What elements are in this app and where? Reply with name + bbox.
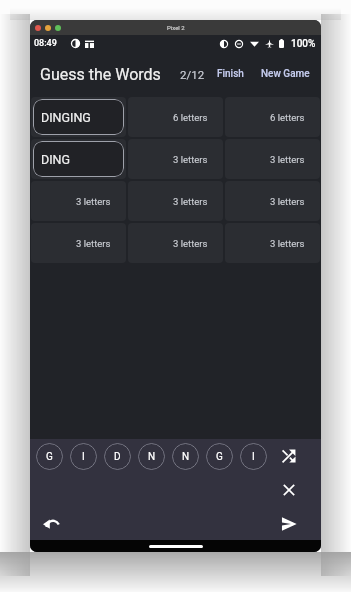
staticText: Guess the Words [40, 65, 161, 84]
staticText: 6 letters [270, 112, 305, 123]
staticText: 3 letters [76, 196, 111, 207]
button[interactable]: Submit word [277, 512, 301, 536]
staticText: Pixel 2 [167, 24, 185, 31]
button[interactable]: N [172, 443, 199, 470]
button[interactable]: Minimize window [45, 25, 51, 31]
button[interactable]: I [240, 443, 267, 470]
button[interactable]: Shuffle letters [277, 444, 301, 468]
staticText: 3 letters [173, 238, 208, 249]
button[interactable]: Close window [35, 25, 41, 31]
staticText: 3 letters [173, 154, 208, 165]
staticText: 6 letters [173, 112, 208, 123]
staticText: 3 letters [270, 238, 305, 249]
staticText: I [82, 451, 85, 463]
staticText: Finish [217, 68, 244, 80]
button[interactable]: Maximize window [55, 25, 61, 31]
staticText: I [252, 451, 255, 463]
button[interactable]: G [36, 443, 63, 470]
button[interactable]: 3 letters [128, 181, 223, 221]
staticText: N [182, 451, 190, 463]
staticText: 3 letters [76, 238, 111, 249]
button[interactable]: DING [31, 139, 126, 179]
staticText: 2/12 [180, 68, 205, 81]
button[interactable]: 3 letters [225, 223, 320, 263]
button[interactable]: New Game [257, 60, 314, 88]
button[interactable]: D [104, 443, 131, 470]
staticText: DING [41, 152, 71, 167]
button[interactable]: 6 letters [225, 97, 320, 137]
staticText: New Game [261, 68, 310, 80]
staticText: G [216, 451, 223, 463]
button[interactable]: 3 letters [31, 181, 126, 221]
button[interactable]: 3 letters [128, 223, 223, 263]
staticText: 3 letters [173, 196, 208, 207]
staticText: D [114, 451, 121, 463]
button[interactable]: 3 letters [128, 139, 223, 179]
button[interactable]: N [138, 443, 165, 470]
staticText: N [148, 451, 156, 463]
staticText: 100% [291, 38, 316, 50]
button[interactable]: DINGING [31, 97, 126, 137]
button[interactable]: 3 letters [225, 139, 320, 179]
staticText: 3 letters [270, 196, 305, 207]
button[interactable]: I [70, 443, 97, 470]
button[interactable]: 3 letters [31, 223, 126, 263]
staticText: DINGING [41, 110, 91, 125]
staticText: G [46, 451, 53, 463]
staticText: 3 letters [270, 154, 305, 165]
button[interactable]: Finish [213, 60, 248, 88]
staticText: 08:49 [34, 38, 57, 49]
button[interactable]: 6 letters [128, 97, 223, 137]
button[interactable]: G [206, 443, 233, 470]
button[interactable]: Clear [277, 478, 301, 502]
button[interactable]: 3 letters [225, 181, 320, 221]
button[interactable]: Undo [39, 512, 63, 536]
